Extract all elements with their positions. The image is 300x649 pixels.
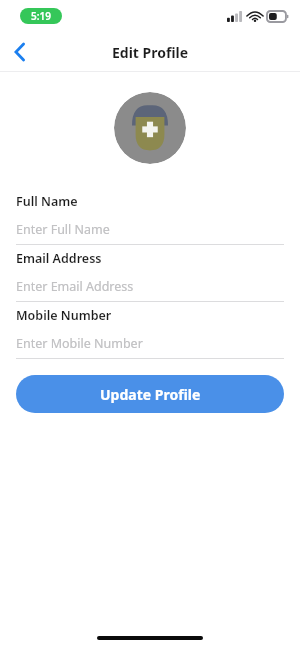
staticText: Enter Email Address	[16, 278, 134, 295]
button[interactable]: Change profile photo	[114, 92, 186, 164]
staticText: 5:19	[31, 9, 51, 23]
staticText: Email Address	[16, 250, 102, 267]
staticText: Mobile Number	[16, 307, 112, 324]
button[interactable]: Update Profile	[16, 375, 284, 413]
staticText: Edit Profile	[112, 43, 189, 62]
staticText: Enter Full Name	[16, 221, 110, 238]
staticText: Enter Mobile Number	[16, 335, 143, 352]
button[interactable]: Mobile Number	[0, 302, 300, 359]
button[interactable]: Email Address	[0, 245, 300, 302]
staticText: Full Name	[16, 193, 78, 210]
button[interactable]: Full Name	[0, 188, 300, 245]
button[interactable]: Back	[0, 32, 40, 72]
staticText: Update Profile	[100, 385, 201, 404]
